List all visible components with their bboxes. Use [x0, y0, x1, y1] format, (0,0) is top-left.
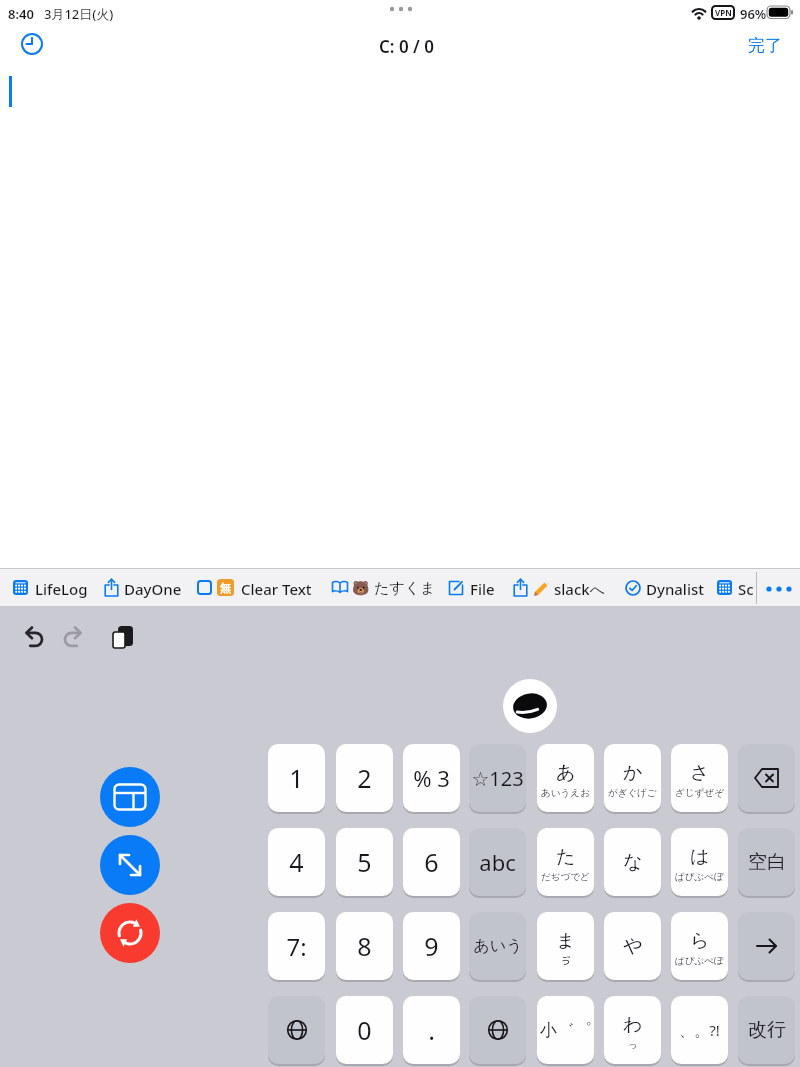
- button[interactable]: ら: [671, 912, 728, 980]
- staticText: たすくま: [374, 579, 436, 598]
- button[interactable]: [100, 903, 160, 963]
- staticText: VPN: [715, 7, 732, 18]
- staticText: DayOne: [124, 579, 182, 599]
- staticText: 🐻: [352, 580, 370, 596]
- staticText: .: [428, 1013, 435, 1047]
- staticText: LifeLog: [35, 579, 88, 599]
- staticText: わ: [623, 1013, 643, 1037]
- button[interactable]: [503, 679, 557, 733]
- button[interactable]: [268, 996, 325, 1064]
- staticText: 、。?!: [679, 1020, 720, 1040]
- button[interactable]: た: [537, 828, 594, 896]
- button[interactable]: [20, 32, 44, 56]
- button[interactable]: や: [604, 912, 661, 980]
- button[interactable]: [100, 767, 160, 827]
- staticText: 9: [424, 929, 439, 963]
- staticText: Clear Text: [241, 579, 312, 599]
- button[interactable]: [714, 570, 756, 606]
- staticText: abc: [479, 847, 516, 877]
- button[interactable]: [762, 576, 796, 602]
- button[interactable]: abc: [469, 828, 526, 896]
- staticText: 2: [357, 761, 372, 795]
- button[interactable]: 9: [403, 912, 460, 980]
- button[interactable]: か: [604, 744, 661, 812]
- button[interactable]: 4: [268, 828, 325, 896]
- button[interactable]: わ: [604, 996, 661, 1064]
- button[interactable]: [21, 626, 48, 653]
- staticText: ら: [690, 929, 710, 953]
- staticText: 5: [357, 845, 372, 879]
- staticText: File: [470, 579, 495, 599]
- button[interactable]: 0: [336, 996, 393, 1064]
- button[interactable]: ま: [537, 912, 594, 980]
- staticText: 8:40: [8, 5, 34, 23]
- button[interactable]: 小゛゜: [537, 996, 594, 1064]
- staticText: がぎぐげご: [608, 787, 657, 799]
- button[interactable]: あいう: [469, 912, 526, 980]
- staticText: ぱぴぷぺぽ: [675, 955, 724, 967]
- staticText: slackへ: [554, 579, 606, 599]
- staticText: か: [623, 761, 643, 785]
- button[interactable]: 7:: [268, 912, 325, 980]
- staticText: 1: [289, 761, 304, 795]
- staticText: 96%: [740, 5, 767, 23]
- staticText: Dynalist: [646, 579, 705, 599]
- staticText: あいう: [473, 936, 523, 956]
- staticText: ばびぶべぼ: [675, 871, 724, 883]
- button[interactable]: 2: [336, 744, 393, 812]
- button[interactable]: [100, 835, 160, 895]
- button[interactable]: 5: [336, 828, 393, 896]
- button[interactable]: 完了: [0, 0, 34, 21]
- staticText: な: [623, 850, 643, 874]
- staticText: ざじずぜぞ: [675, 787, 724, 799]
- button[interactable]: 、。?!: [671, 996, 728, 1064]
- button[interactable]: .: [403, 996, 460, 1064]
- button[interactable]: 1: [268, 744, 325, 812]
- staticText: あいうえお: [541, 787, 590, 799]
- button[interactable]: [101, 570, 181, 606]
- button[interactable]: [738, 912, 795, 980]
- staticText: は: [690, 845, 710, 869]
- staticText: や: [623, 934, 643, 958]
- staticText: Sc: [738, 579, 754, 599]
- staticText: 6: [424, 845, 439, 879]
- button[interactable]: あ: [537, 744, 594, 812]
- staticText: 4: [289, 845, 304, 879]
- button[interactable]: [469, 996, 526, 1064]
- button[interactable]: [622, 570, 704, 606]
- staticText: % 3: [413, 763, 450, 793]
- button[interactable]: % 3: [403, 744, 460, 812]
- staticText: C: 0 / 0: [379, 35, 435, 58]
- staticText: さ: [690, 761, 710, 785]
- button[interactable]: 6: [403, 828, 460, 896]
- staticText: 8: [357, 929, 372, 963]
- staticText: 3月12日(火): [44, 5, 114, 23]
- button[interactable]: [10, 570, 88, 606]
- button[interactable]: 8: [336, 912, 393, 980]
- button[interactable]: は: [671, 828, 728, 896]
- staticText: ま: [556, 929, 576, 953]
- staticText: ☆123: [471, 765, 524, 792]
- staticText: 0: [357, 1013, 372, 1047]
- staticText: っ: [628, 1039, 638, 1051]
- button[interactable]: さ: [671, 744, 728, 812]
- staticText: ゔ: [561, 955, 571, 967]
- staticText: 空白: [748, 850, 786, 874]
- button[interactable]: 改行: [738, 996, 795, 1064]
- button[interactable]: [510, 570, 610, 606]
- button[interactable]: [194, 570, 316, 606]
- button[interactable]: [64, 626, 91, 653]
- staticText: た: [556, 845, 576, 869]
- button[interactable]: [738, 744, 795, 812]
- button[interactable]: [328, 570, 436, 606]
- button[interactable]: な: [604, 828, 661, 896]
- button[interactable]: [110, 625, 136, 651]
- button[interactable]: [445, 570, 497, 606]
- staticText: あ: [556, 761, 576, 785]
- staticText: 小゛゜: [540, 1020, 592, 1041]
- button[interactable]: ☆123: [469, 744, 526, 812]
- staticText: だぢづでど: [541, 871, 590, 883]
- staticText: 7:: [286, 930, 307, 963]
- staticText: 無: [220, 581, 231, 595]
- button[interactable]: 空白: [738, 828, 795, 896]
